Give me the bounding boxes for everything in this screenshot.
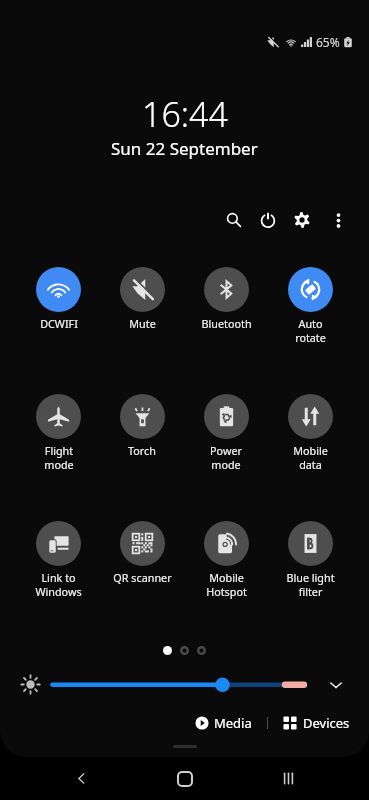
- staticText: 16:44: [142, 91, 228, 137]
- button[interactable]: Recents: [266, 757, 310, 800]
- button[interactable]: Mobile data: [268, 394, 352, 472]
- staticText: QR scanner: [113, 570, 172, 585]
- button[interactable]: Power mode: [184, 394, 268, 472]
- staticText: Sun 22 September: [111, 137, 258, 160]
- staticText: Flight mode: [44, 443, 74, 472]
- staticText: Link to Windows: [35, 570, 82, 599]
- button[interactable]: Mute: [100, 267, 184, 331]
- button[interactable]: Back: [59, 757, 103, 800]
- button[interactable]: DCWIFI: [17, 267, 100, 331]
- button[interactable]: Flight mode: [17, 394, 100, 472]
- button[interactable]: Mobile Hotspot: [184, 521, 268, 599]
- button[interactable]: Power: [255, 207, 281, 233]
- button[interactable]: Media: [193, 714, 254, 732]
- staticText: Torch: [128, 443, 156, 458]
- staticText: 65%: [316, 34, 340, 50]
- button[interactable]: Home: [163, 757, 207, 800]
- staticText: Bluetooth: [201, 316, 252, 331]
- button[interactable]: More options: [325, 207, 351, 233]
- button[interactable]: Search: [221, 207, 247, 233]
- staticText: Auto rotate: [295, 316, 326, 345]
- button[interactable]: Auto rotate: [268, 267, 352, 345]
- button[interactable]: Devices: [281, 714, 352, 732]
- button[interactable]: QR scanner: [100, 521, 184, 585]
- staticText: Mobile data: [293, 443, 328, 472]
- button[interactable]: Blue light filter: [268, 521, 352, 599]
- button[interactable]: Bluetooth: [184, 267, 268, 331]
- button[interactable]: Torch: [100, 394, 184, 458]
- button[interactable]: Expand: [323, 672, 349, 698]
- button[interactable]: Settings: [289, 207, 315, 233]
- staticText: Devices: [303, 714, 350, 732]
- staticText: Mute: [129, 316, 156, 331]
- staticText: Power mode: [210, 443, 242, 472]
- staticText: Media: [214, 714, 252, 732]
- staticText: Blue light filter: [286, 570, 335, 599]
- staticText: DCWIFI: [40, 316, 78, 331]
- staticText: Mobile Hotspot: [206, 570, 247, 599]
- button[interactable]: Link to Windows: [17, 521, 100, 599]
